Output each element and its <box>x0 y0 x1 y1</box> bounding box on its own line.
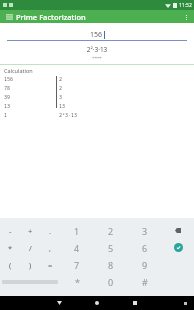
button[interactable]: More options <box>181 12 191 22</box>
button[interactable]: 5 <box>94 239 128 256</box>
button[interactable]: 7 <box>60 256 94 273</box>
staticText: 13 <box>59 103 66 110</box>
button[interactable]: ) <box>20 256 40 273</box>
button[interactable]: 9 <box>128 256 162 273</box>
button[interactable]: 1 <box>60 222 94 239</box>
button[interactable]: , <box>40 239 60 256</box>
staticText: 6 <box>142 242 148 254</box>
staticText: 11:52 <box>179 2 192 9</box>
staticText: / <box>29 243 32 253</box>
button[interactable]: Space <box>0 273 60 290</box>
staticText: 4 <box>74 242 80 254</box>
staticText: 1 <box>4 112 8 119</box>
button[interactable]: Keyboard <box>180 298 190 308</box>
staticText: 0 <box>108 276 114 288</box>
staticText: ••••• <box>0 55 194 62</box>
button[interactable]: * <box>0 239 20 256</box>
staticText: 2²·3·13 <box>0 45 194 54</box>
staticText: 2 <box>59 76 63 83</box>
button[interactable]: 6 <box>128 239 162 256</box>
staticText: 13 <box>4 103 11 110</box>
button[interactable]: 8 <box>94 256 128 273</box>
button[interactable]: Recent apps <box>124 296 146 310</box>
button[interactable]: 4 <box>60 239 94 256</box>
button[interactable]: . <box>40 222 60 239</box>
staticText: 7 <box>74 259 80 271</box>
staticText: * <box>75 276 80 288</box>
staticText: # <box>142 276 148 288</box>
button[interactable]: ( <box>0 256 20 273</box>
button[interactable]: Done <box>168 239 188 256</box>
staticText: - <box>9 226 12 236</box>
staticText: * <box>8 243 13 253</box>
button[interactable]: 156 <box>7 29 187 40</box>
button[interactable]: 0 <box>94 273 128 290</box>
button[interactable]: * <box>60 273 94 290</box>
staticText: Calculation <box>4 67 33 74</box>
staticText: 39 <box>4 94 11 101</box>
staticText: 2 <box>108 225 114 237</box>
staticText: . <box>49 226 52 236</box>
button[interactable]: - <box>0 222 20 239</box>
button[interactable]: + <box>20 222 40 239</box>
staticText: 9 <box>142 259 148 271</box>
button[interactable]: = <box>40 256 60 273</box>
button[interactable]: 2 <box>94 222 128 239</box>
button[interactable]: Backspace <box>168 222 188 239</box>
staticText: 2 <box>59 85 63 92</box>
staticText: 1 <box>74 225 80 237</box>
button[interactable]: / <box>20 239 40 256</box>
button[interactable]: 3 <box>128 222 162 239</box>
staticText: , <box>49 243 52 253</box>
staticText: 8 <box>108 259 114 271</box>
staticText: 156 <box>4 76 14 83</box>
staticText: 2²3·13 <box>59 112 78 119</box>
staticText: = <box>48 260 53 270</box>
button[interactable]: Back <box>48 296 70 310</box>
staticText: 3 <box>59 94 63 101</box>
staticText: 3 <box>142 225 148 237</box>
staticText: ) <box>29 260 32 270</box>
button[interactable]: Open navigation menu <box>4 12 14 22</box>
button[interactable]: # <box>128 273 162 290</box>
staticText: 156 <box>90 30 103 40</box>
staticText: + <box>28 226 33 236</box>
staticText: 5 <box>108 242 114 254</box>
button[interactable]: Home <box>86 296 108 310</box>
staticText: Prime Factorization <box>16 12 86 22</box>
staticText: 78 <box>4 85 11 92</box>
staticText: ( <box>9 260 12 270</box>
